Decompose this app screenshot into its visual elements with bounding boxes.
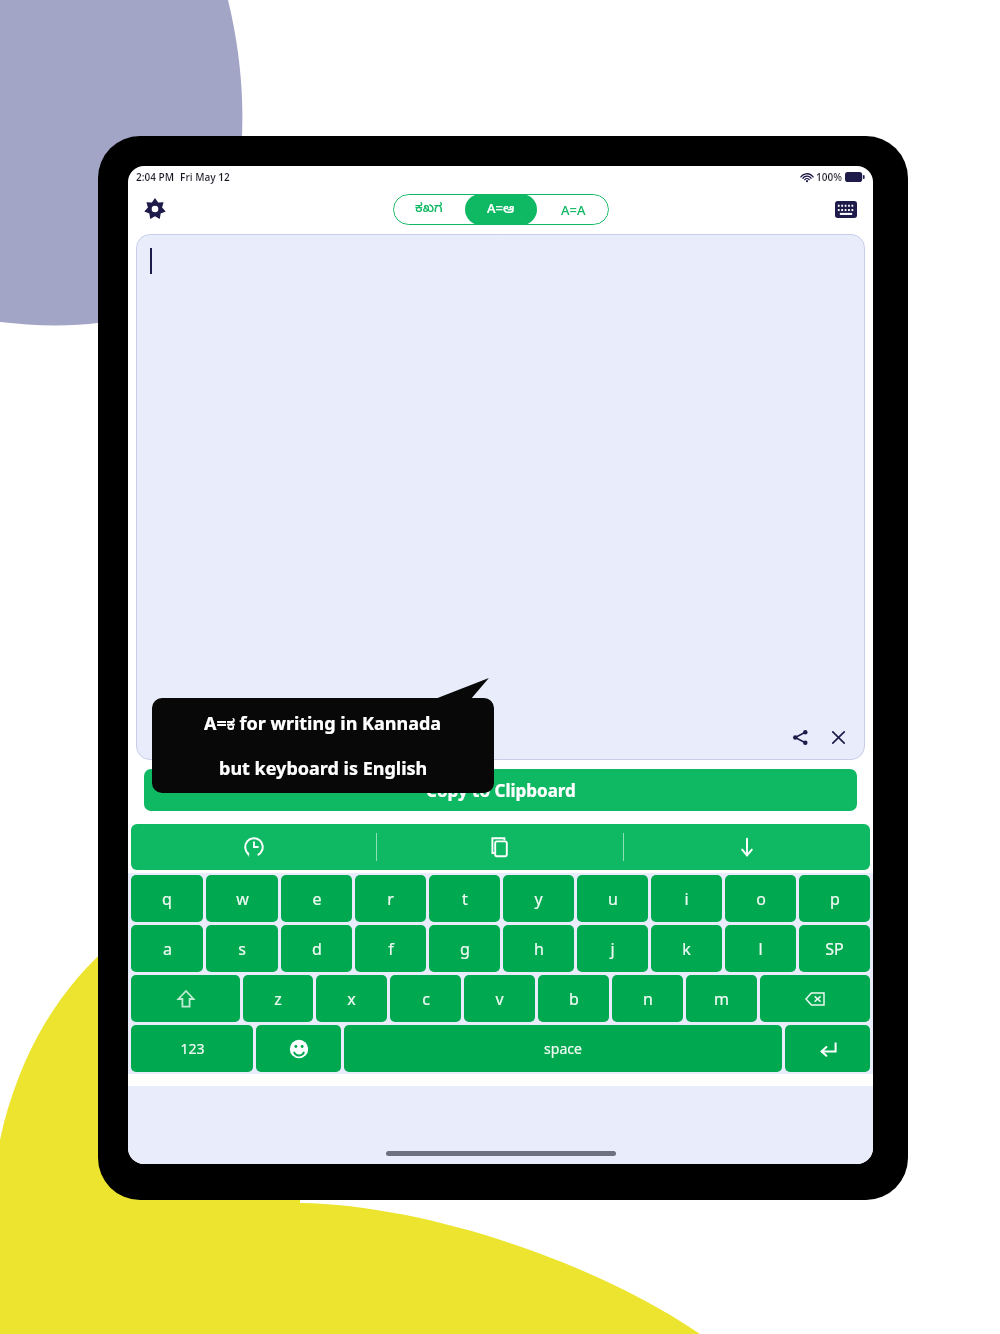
button[interactable]: A=A [537,194,609,225]
button[interactable]: o [725,875,796,922]
staticText: k [682,938,691,960]
button[interactable]: Share [136,234,865,760]
staticText: a [163,938,172,960]
button[interactable]: Hide keyboard [624,824,870,870]
button[interactable]: j [577,925,648,972]
button[interactable]: e [281,875,352,922]
staticText: Fri May 12 [180,170,230,184]
button[interactable]: r [355,875,426,922]
staticText: g [460,938,470,960]
button[interactable]: Keyboard [829,192,863,226]
button[interactable]: Copy [377,824,623,870]
button[interactable]: 123 [131,1025,253,1072]
button[interactable]: t [429,875,500,922]
button[interactable]: Shift [131,975,240,1022]
button[interactable]: p [799,875,870,922]
staticText: j [610,938,615,960]
button[interactable]: s [206,925,278,972]
button[interactable]: l [725,925,796,972]
staticText: 2:04 PM [136,170,174,184]
button[interactable]: Copy to Clipboard [144,769,857,811]
staticText: but keyboard is English [219,756,428,781]
button[interactable]: a [131,925,203,972]
button[interactable]: y [503,875,574,922]
button[interactable]: k [651,925,722,972]
staticText: t [462,888,468,910]
staticText: i [684,888,689,910]
button[interactable]: n [612,975,683,1022]
staticText: b [569,988,579,1010]
staticText: o [756,888,766,910]
staticText: A=ಆ [487,199,515,220]
staticText: e [312,888,322,910]
staticText: w [236,888,249,910]
staticText: f [388,938,394,960]
staticText: h [534,938,544,960]
button[interactable]: Clear [825,724,851,750]
button[interactable]: A=ಆ [465,194,537,225]
button[interactable]: Share [787,724,813,750]
button[interactable]: h [503,925,574,972]
button[interactable]: z [243,975,313,1022]
button[interactable]: space [344,1025,782,1072]
staticText: SP [825,938,844,960]
button[interactable]: History [131,824,376,870]
staticText: n [643,988,653,1010]
button[interactable]: q [131,875,203,922]
button[interactable]: u [577,875,648,922]
staticText: 123 [180,1039,205,1058]
staticText: c [422,988,430,1010]
button[interactable]: g [429,925,500,972]
button[interactable]: d [281,925,352,972]
staticText: u [608,888,618,910]
button[interactable]: Backspace [760,975,870,1022]
staticText: A=A [561,201,586,219]
staticText: r [387,888,394,910]
staticText: z [274,988,282,1010]
staticText: s [238,938,246,960]
staticText: space [544,1039,582,1058]
button[interactable]: Settings [138,192,172,226]
staticText: q [162,888,172,910]
staticText: Copy to Clipboard [426,779,576,802]
button[interactable]: m [686,975,757,1022]
button[interactable]: v [464,975,535,1022]
button[interactable]: f [355,925,426,972]
button[interactable]: i [651,875,722,922]
button[interactable]: c [390,975,461,1022]
staticText: 100% [816,170,842,184]
staticText: d [312,938,322,960]
staticText: A=ಕ for writing in Kannada [204,711,442,736]
button[interactable]: w [206,875,278,922]
staticText: x [347,988,356,1010]
staticText: p [830,888,840,910]
button[interactable]: ಕಖಗ [393,194,465,225]
button[interactable]: b [538,975,609,1022]
button[interactable]: x [316,975,387,1022]
button[interactable]: SP [799,925,870,972]
staticText: ಕಖಗ [415,201,443,219]
button[interactable]: Emoji [256,1025,341,1072]
staticText: v [495,988,504,1010]
button[interactable]: Enter [785,1025,870,1072]
staticText: y [534,888,543,910]
staticText: m [714,988,729,1010]
staticText: l [758,938,763,960]
